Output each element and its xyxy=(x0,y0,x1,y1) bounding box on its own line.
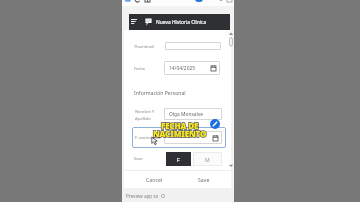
staticText: NACIMIENTO xyxy=(153,128,207,139)
staticText: Nombre Y Apellido xyxy=(135,109,155,121)
button[interactable]: Full screen xyxy=(226,0,232,2)
staticText: Nueva Historia Clínica xyxy=(156,19,207,26)
staticText: Olga Monsalve xyxy=(169,111,204,118)
staticText: Preview app so xyxy=(126,193,159,199)
button[interactable]: Device preview xyxy=(124,0,131,2)
staticText: F xyxy=(177,156,180,163)
staticText: Fecha xyxy=(134,66,145,71)
staticText: NACIMIENTO xyxy=(153,128,207,139)
staticText: Thumbnail xyxy=(134,44,154,49)
staticText: Información Personal xyxy=(134,90,186,97)
staticText: FECHA DE xyxy=(161,120,199,131)
button[interactable]: Chat xyxy=(145,18,152,26)
button[interactable]: Save xyxy=(180,171,227,188)
button[interactable] xyxy=(165,42,221,50)
button[interactable]: 14/04/2025 xyxy=(164,61,220,75)
button[interactable]: Cancel xyxy=(131,171,178,188)
staticText: Save xyxy=(198,176,210,183)
staticText: M xyxy=(205,156,210,163)
button[interactable]: Menu xyxy=(129,14,230,30)
staticText: Cancel xyxy=(146,176,163,183)
button[interactable]: Zoom out xyxy=(218,0,224,2)
button[interactable]: Edit xyxy=(210,119,220,129)
button[interactable]: Layout xyxy=(144,0,151,2)
staticText: FECHA DE xyxy=(161,120,199,131)
button[interactable]: Menu xyxy=(131,19,137,24)
button[interactable]: F xyxy=(166,152,191,166)
staticText: Sexo xyxy=(134,156,143,161)
staticText: 14/04/2025 xyxy=(169,65,196,72)
button[interactable]: M xyxy=(193,152,222,166)
button[interactable]: Run preview xyxy=(195,0,203,2)
button[interactable]: Olga Monsalve xyxy=(164,108,222,120)
button[interactable] xyxy=(164,131,222,144)
button[interactable]: Rotate xyxy=(134,0,141,2)
staticText: F. nacimiento xyxy=(135,135,161,141)
